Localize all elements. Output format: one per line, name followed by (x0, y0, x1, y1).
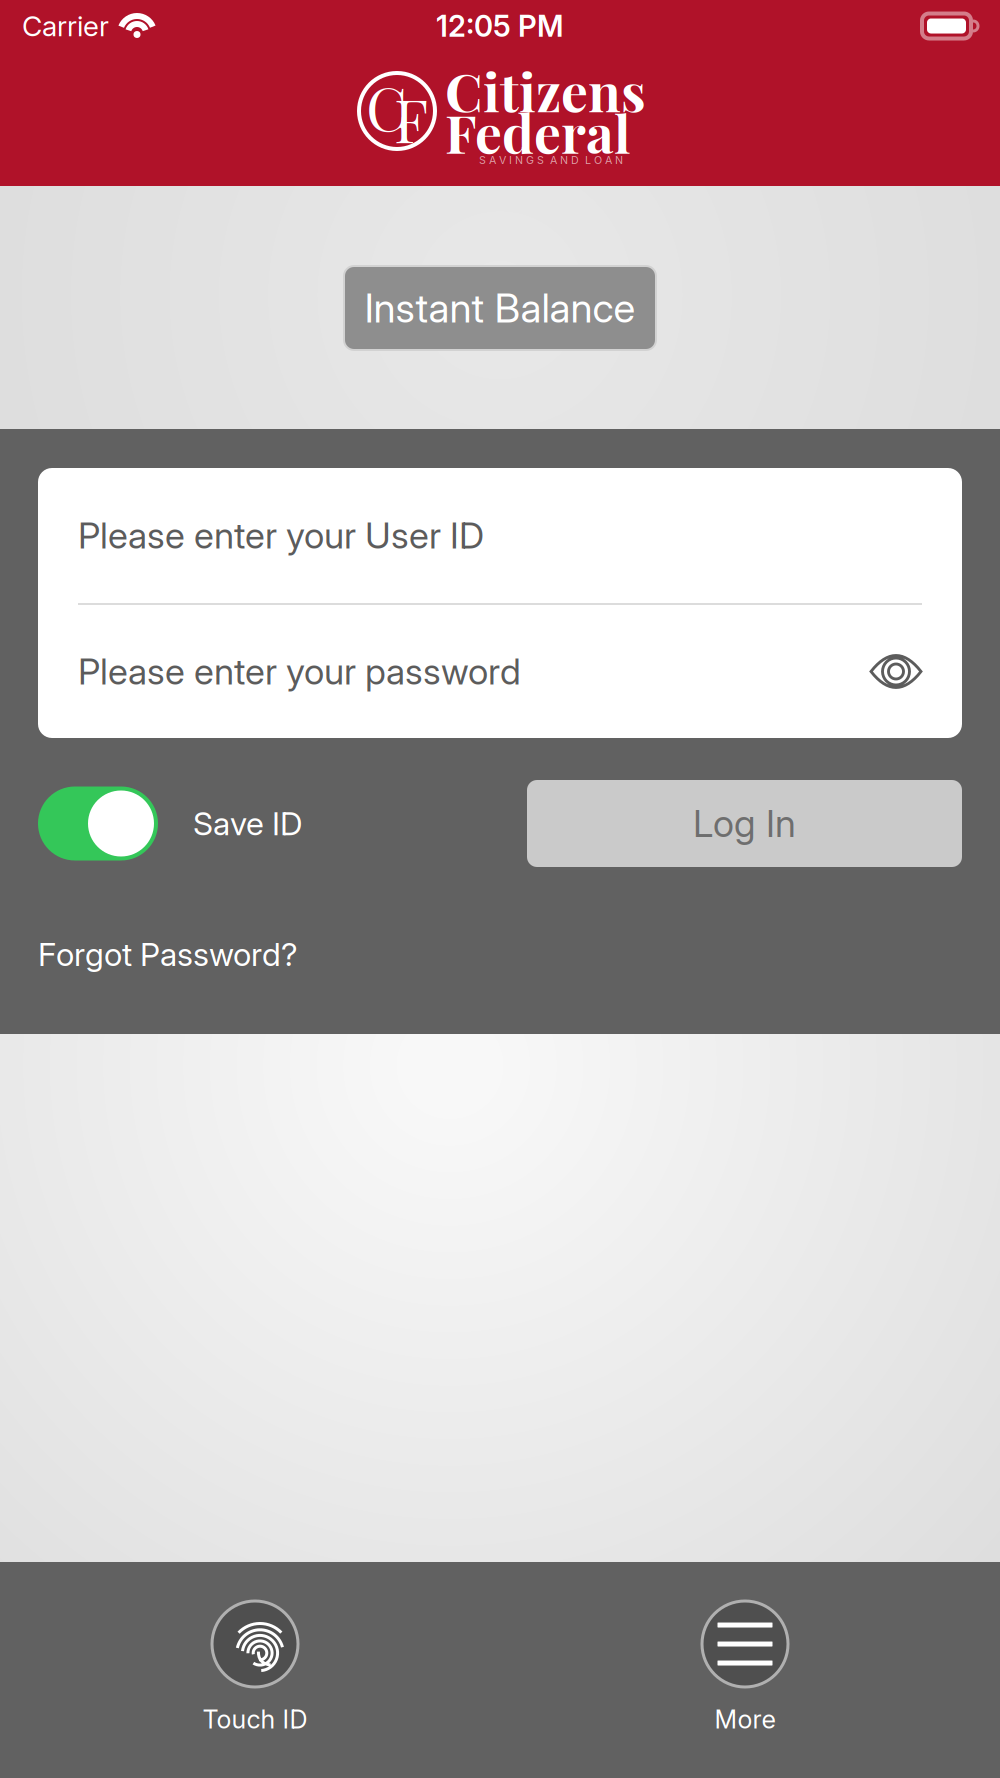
staticText: Please enter your User ID (78, 514, 484, 557)
button[interactable]: Save ID (38, 786, 303, 860)
staticText: Forgot Password? (38, 935, 298, 974)
button[interactable]: Please enter your User ID (38, 468, 962, 603)
staticText: Touch ID (202, 1704, 307, 1735)
button[interactable]: Please enter your password (38, 605, 962, 738)
staticText: Citizens (445, 71, 646, 112)
button[interactable]: Instant Balance (344, 266, 656, 350)
staticText: Save ID (193, 804, 303, 843)
staticText: Carrier (22, 9, 109, 43)
button[interactable]: Log In (527, 780, 962, 867)
staticText: C (366, 66, 407, 146)
staticText: Please enter your password (78, 650, 521, 693)
staticText: Instant Balance (364, 284, 635, 332)
button[interactable]: More (645, 1601, 845, 1761)
staticText: 12:05 PM (436, 8, 564, 44)
staticText: Log In (693, 801, 796, 846)
staticText: F (394, 78, 428, 158)
staticText: S A V I N G S A N D L O A N (479, 154, 623, 166)
button[interactable]: Touch ID (155, 1601, 355, 1761)
staticText: Federal (445, 112, 631, 154)
staticText: More (714, 1704, 775, 1735)
button[interactable]: Forgot Password? (38, 935, 298, 974)
